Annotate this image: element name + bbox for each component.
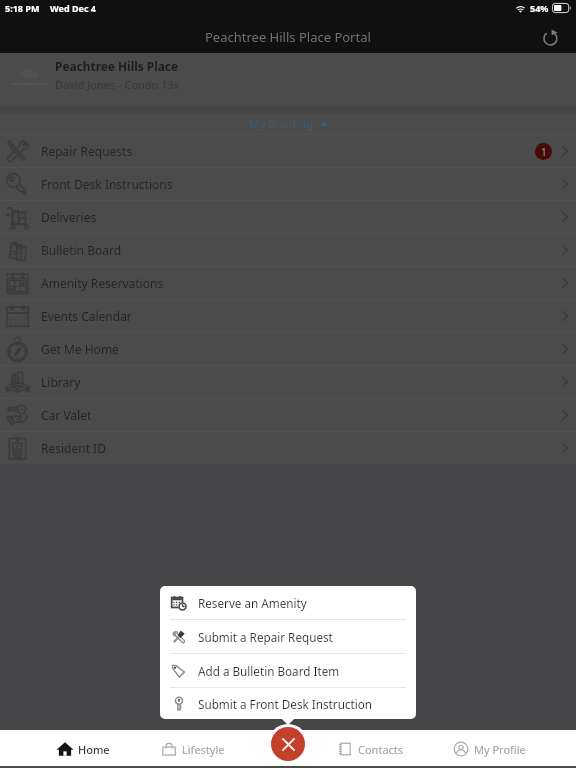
staticText: Submit a Repair Request [198, 629, 333, 645]
button[interactable]: Bulletin Board [0, 234, 576, 266]
button[interactable]: My Profile [425, 730, 541, 768]
staticText: Amenity Reservations [41, 275, 164, 291]
staticText: Resident ID [41, 440, 106, 456]
button[interactable]: Front Desk Instructions [0, 168, 576, 200]
staticText: My Building [249, 116, 314, 132]
button[interactable]: Resident ID [0, 432, 576, 464]
button[interactable]: Contacts [309, 730, 422, 768]
staticText: Library [41, 374, 81, 390]
staticText: Peachtree Hills Place Portal [205, 28, 371, 46]
staticText: Wed Dec 4 [50, 2, 97, 14]
staticText: Get Me Home [41, 341, 119, 357]
staticText: 54% [530, 2, 549, 14]
button[interactable]: Get Me Home [0, 333, 576, 365]
button[interactable]: My Building [0, 113, 576, 134]
button[interactable]: Car Valet [0, 399, 576, 431]
staticText: Car Valet [41, 407, 92, 423]
button[interactable]: Submit a Repair Request [160, 620, 416, 653]
staticText: Lifestyle [182, 742, 225, 757]
button[interactable]: Add a Bulletin Board Item [160, 654, 416, 687]
button[interactable]: Lifestyle [133, 730, 248, 768]
staticText: 5:18 PM [5, 2, 40, 14]
button[interactable]: Peachtree Hills Place [0, 53, 576, 105]
staticText: Add a Bulletin Board Item [198, 663, 340, 679]
button[interactable]: Deliveries [0, 201, 576, 233]
staticText: Repair Requests [41, 143, 133, 159]
button[interactable]: Submit a Front Desk Instruction [160, 688, 416, 719]
staticText: Submit a Front Desk Instruction [198, 696, 373, 712]
staticText: Bulletin Board [41, 242, 122, 258]
staticText: Home [78, 742, 110, 757]
button[interactable]: Repair Requests [0, 135, 576, 167]
button[interactable]: Events Calendar [0, 300, 576, 332]
staticText: Front Desk Instructions [41, 176, 173, 192]
button[interactable]: Refresh [537, 23, 565, 51]
staticText: Reserve an Amenity [198, 595, 307, 611]
staticText: Deliveries [41, 209, 97, 225]
button[interactable]: Amenity Reservations [0, 267, 576, 299]
button[interactable]: Close menu [271, 727, 305, 761]
staticText: Contacts [358, 742, 404, 757]
staticText: My Profile [474, 742, 526, 757]
staticText: 1 [541, 145, 547, 159]
staticText: Events Calendar [41, 308, 132, 324]
button[interactable]: Reserve an Amenity [160, 586, 416, 619]
button[interactable]: Home [28, 730, 147, 768]
staticText: David Jones - Condo 13x [55, 77, 180, 92]
staticText: Peachtree Hills Place [55, 58, 179, 74]
button[interactable]: Library [0, 366, 576, 398]
